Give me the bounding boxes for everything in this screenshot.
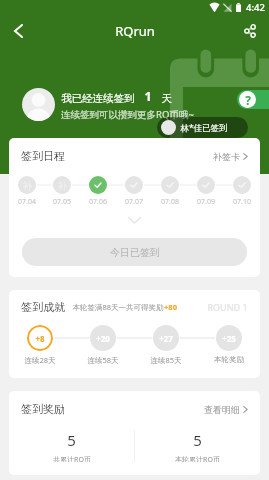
- button[interactable]: Back: [0, 15, 36, 46]
- staticText: ?: [245, 92, 251, 108]
- button[interactable]: 补: [18, 176, 36, 194]
- staticText: 连续28天: [24, 355, 56, 365]
- button[interactable]: 今日已签到: [22, 238, 247, 266]
- staticText: +20: [96, 333, 110, 344]
- staticText: 补: [58, 180, 67, 191]
- button[interactable]: +20: [90, 325, 116, 351]
- button[interactable]: +25: [216, 325, 242, 351]
- staticText: 本轮签满88天一共可得奖励: [72, 302, 164, 312]
- staticText: +80: [164, 302, 177, 312]
- staticText: 今日已签到: [110, 246, 160, 259]
- staticText: RQrun: [115, 22, 155, 40]
- button[interactable]: [161, 176, 179, 194]
- button[interactable]: [89, 176, 107, 194]
- staticText: 5: [67, 430, 76, 450]
- button[interactable]: Share: [232, 15, 268, 46]
- staticText: 连续58天: [87, 355, 119, 365]
- staticText: 本轮奖励: [214, 355, 244, 364]
- staticText: 5: [193, 430, 202, 450]
- staticText: 07.06: [89, 197, 107, 207]
- staticText: 签到日程: [21, 149, 65, 163]
- staticText: ROUND 1: [207, 301, 248, 313]
- staticText: 签到成就: [21, 300, 65, 314]
- staticText: 天: [161, 92, 172, 105]
- button[interactable]: 查看明细: [204, 404, 248, 415]
- button[interactable]: [233, 176, 251, 194]
- button[interactable]: 补签卡: [213, 151, 248, 162]
- staticText: 补签卡: [213, 151, 240, 162]
- button[interactable]: +27: [153, 325, 179, 351]
- staticText: 补: [23, 180, 32, 191]
- staticText: 07.04: [18, 197, 36, 207]
- staticText: 07.05: [53, 197, 71, 207]
- staticText: 连续签到可以攒到更多RQ币哦~: [61, 108, 194, 121]
- staticText: +25: [222, 333, 236, 344]
- staticText: 07.09: [197, 197, 215, 207]
- staticText: 我已经连续签到: [61, 92, 135, 105]
- button[interactable]: Help: [237, 90, 269, 109]
- staticText: +8: [35, 333, 45, 344]
- staticText: +27: [159, 333, 173, 344]
- staticText: 查看明细: [204, 404, 240, 415]
- staticText: 连续85天: [150, 355, 182, 365]
- staticText: 1: [144, 88, 152, 105]
- staticText: 共累计RQ币: [53, 455, 91, 462]
- button[interactable]: [125, 176, 143, 194]
- staticText: 4:42: [246, 1, 265, 14]
- staticText: 07.08: [161, 197, 179, 207]
- button[interactable]: 补: [53, 176, 71, 194]
- staticText: 本轮累计RQ币: [175, 455, 220, 462]
- staticText: 07.07: [125, 197, 143, 207]
- button[interactable]: +8: [27, 325, 53, 351]
- staticText: 07.10: [233, 197, 251, 207]
- staticText: 林*佳已签到: [180, 122, 228, 134]
- staticText: 签到奖励: [21, 402, 65, 416]
- button[interactable]: [197, 176, 215, 194]
